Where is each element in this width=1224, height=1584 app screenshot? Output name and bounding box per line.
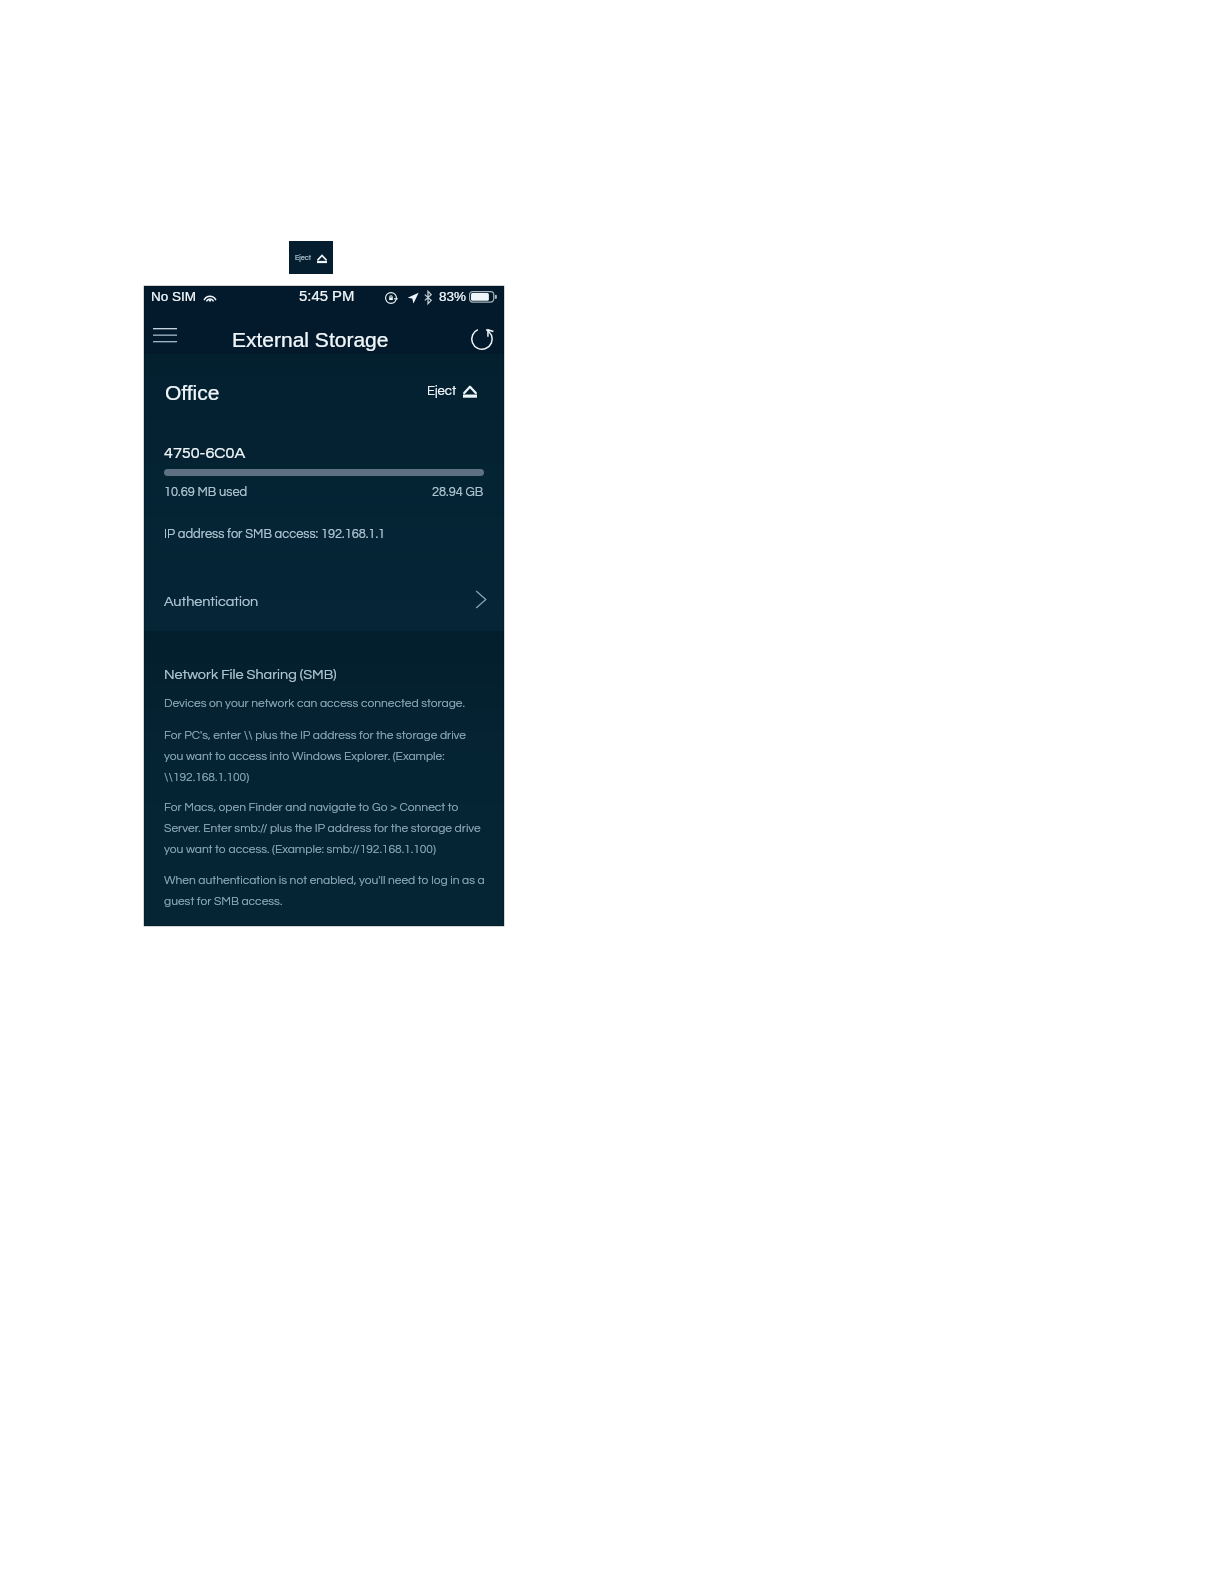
staticText: 4750-6C0A [164, 445, 246, 462]
staticText: Devices on your network can access conne… [164, 697, 465, 709]
staticText: For Macs, open Finder and navigate to Go… [164, 801, 481, 855]
staticText: Authentication [164, 594, 259, 609]
staticText: 28.94 GB [432, 486, 484, 499]
staticText: 5:45 PM [299, 288, 355, 305]
staticText: No SIM [151, 289, 197, 304]
staticText: IP address for SMB access: 192.168.1.1 [164, 528, 386, 541]
staticText: 10.69 MB used [164, 486, 248, 499]
staticText: Office [165, 381, 220, 404]
staticText: External Storage [232, 328, 389, 351]
staticText: Network File Sharing (SMB) [164, 667, 337, 682]
button[interactable]: Refresh [461, 319, 503, 359]
button[interactable]: Menu [144, 315, 186, 355]
staticText: Eject [295, 254, 312, 261]
staticText: For PC's, enter \\ plus the IP address f… [164, 729, 467, 783]
button[interactable]: Eject [423, 380, 481, 404]
button[interactable]: Eject [289, 241, 333, 274]
staticText: 83% [439, 289, 467, 304]
button[interactable]: Authentication [144, 572, 504, 631]
staticText: Eject [427, 384, 457, 397]
staticText: When authentication is not enabled, you'… [164, 874, 485, 907]
